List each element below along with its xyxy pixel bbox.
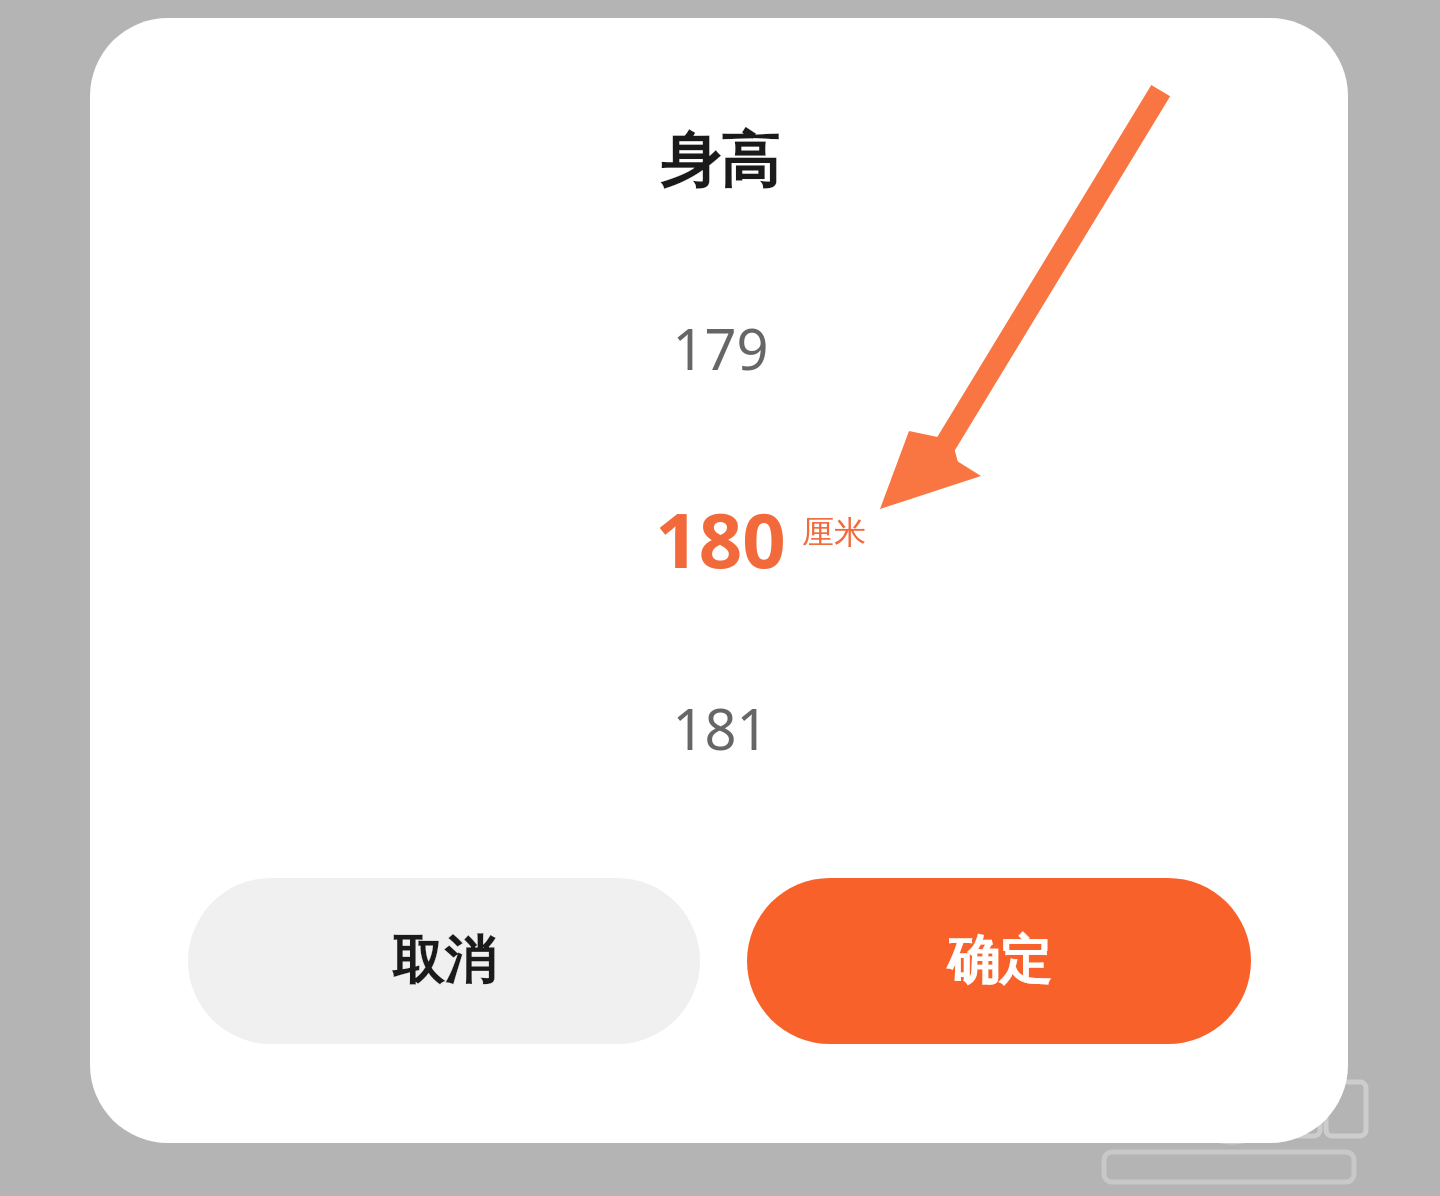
other: Annotation arrow pointing at selected va… xyxy=(0,0,1440,1196)
button[interactable]: 179 xyxy=(520,305,920,391)
button[interactable]: 180 xyxy=(520,487,920,589)
staticText: 厘米 xyxy=(802,512,866,552)
staticText: 181 xyxy=(672,690,769,766)
staticText: 取消 xyxy=(392,928,496,994)
staticText: 180 xyxy=(655,487,786,589)
button[interactable]: 确定 xyxy=(747,878,1251,1044)
button[interactable]: 取消 xyxy=(188,878,700,1044)
button[interactable]: 181 xyxy=(520,685,920,771)
staticText: 身高 xyxy=(660,123,780,199)
staticText: 179 xyxy=(672,310,769,386)
staticText: 确定 xyxy=(947,928,1051,994)
